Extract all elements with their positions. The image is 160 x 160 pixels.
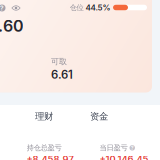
staticText: 可取 <box>51 57 67 67</box>
staticText: 持仓总盈亏 <box>26 143 61 152</box>
staticText: 当日盈亏 <box>99 143 127 152</box>
staticText: +8,458.97 <box>26 153 73 160</box>
button[interactable]: Help <box>0 1 8 14</box>
staticText: 理财 <box>35 111 53 122</box>
staticText: +10,146.45 <box>99 153 148 160</box>
staticText: .60 <box>0 16 24 36</box>
staticText: 资金 <box>90 111 108 122</box>
staticText: 6.61 <box>51 68 73 81</box>
staticText: ? <box>0 4 4 12</box>
staticText: 仓位 <box>69 3 83 12</box>
button[interactable]: 理财 <box>24 107 64 125</box>
button[interactable]: 资金 <box>79 107 119 125</box>
staticText: ? <box>131 145 134 151</box>
staticText: 44.5% <box>85 3 110 12</box>
button[interactable]: Hide balance <box>8 2 23 14</box>
